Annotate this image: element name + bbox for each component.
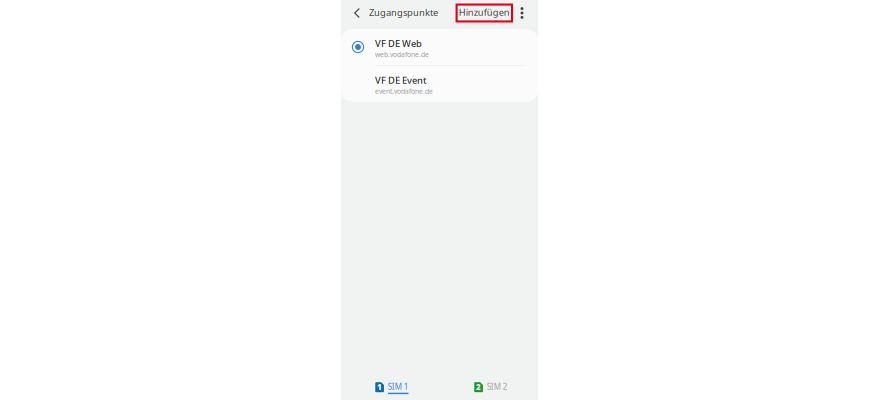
staticText: SIM 2 bbox=[487, 381, 508, 392]
button[interactable]: Back bbox=[349, 1, 363, 25]
button[interactable]: More options bbox=[512, 1, 538, 25]
staticText: event.vodafone.de bbox=[375, 87, 433, 96]
staticText: Hinzufügen bbox=[459, 6, 510, 18]
staticText: 1 bbox=[377, 382, 382, 392]
button[interactable]: Hinzufügen bbox=[457, 5, 512, 21]
button[interactable]: VF DE Web bbox=[341, 29, 538, 65]
staticText: SIM 1 bbox=[388, 381, 409, 392]
button[interactable]: 1 bbox=[341, 375, 440, 399]
button[interactable]: VF DE Event bbox=[341, 66, 538, 102]
button[interactable]: 2 bbox=[440, 375, 538, 399]
staticText: VF DE Web bbox=[375, 37, 422, 49]
staticText: web.vodafone.de bbox=[375, 50, 429, 59]
staticText: VF DE Event bbox=[375, 74, 427, 86]
staticText: 2 bbox=[476, 382, 481, 392]
staticText: Zugangspunkte bbox=[369, 6, 438, 19]
